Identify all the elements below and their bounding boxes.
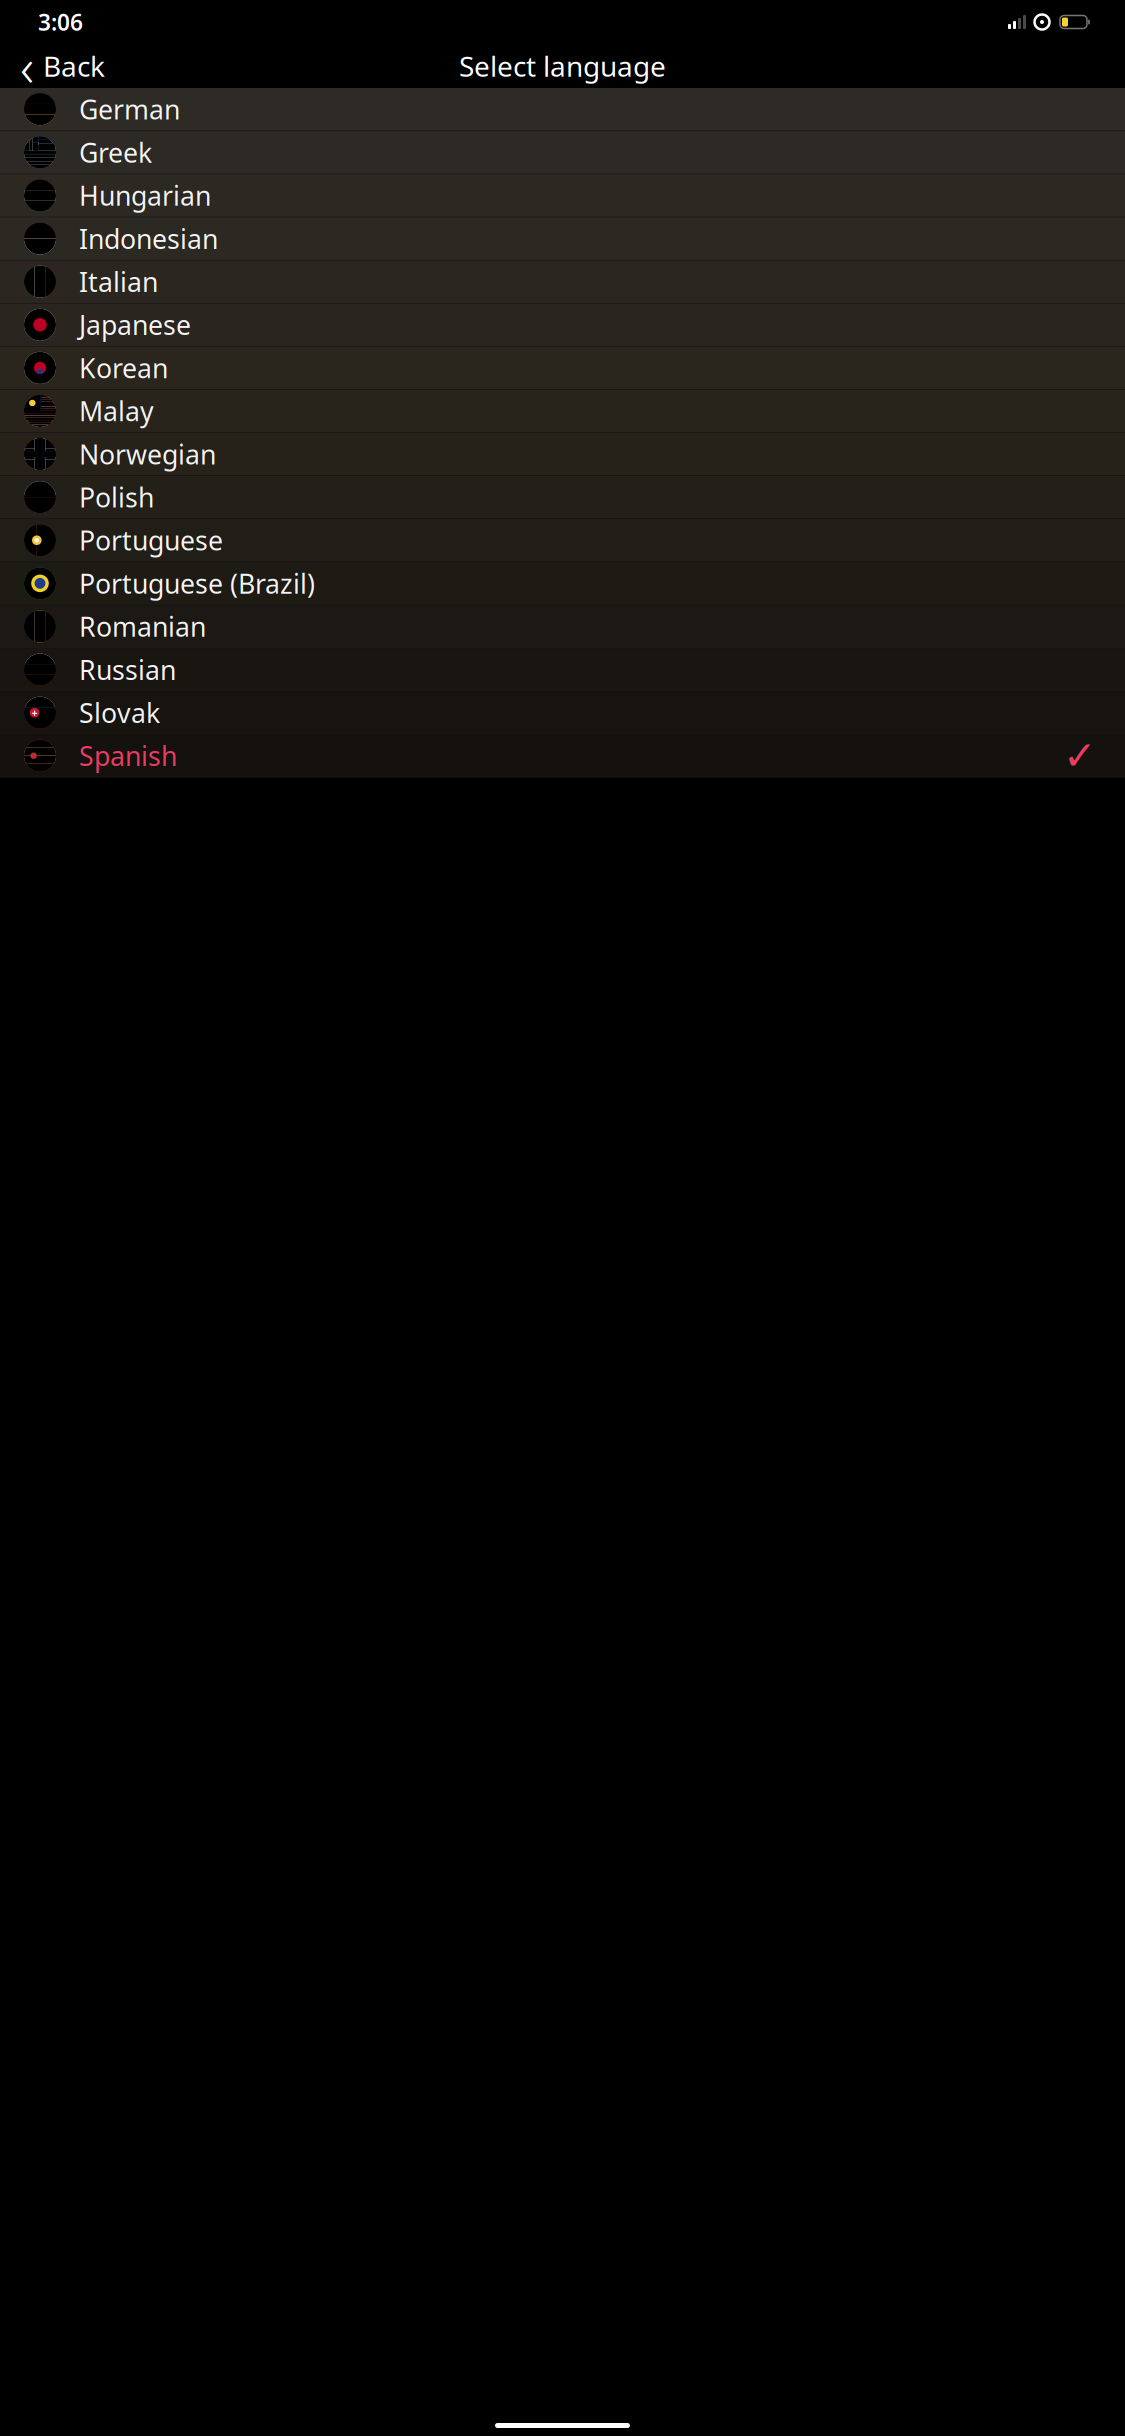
staticText: Portuguese <box>79 522 223 558</box>
staticText: Spanish <box>79 738 177 773</box>
staticText: Back <box>43 47 105 85</box>
button[interactable]: Spanish <box>0 734 1125 778</box>
button[interactable]: Korean <box>0 347 1125 390</box>
staticText: Indonesian <box>79 221 218 256</box>
button[interactable]: German <box>0 88 1125 131</box>
button[interactable]: Polish <box>0 476 1125 519</box>
button[interactable]: + <box>0 691 1125 734</box>
staticText: ✓ <box>1063 733 1097 778</box>
button[interactable]: Hungarian <box>0 174 1125 217</box>
button[interactable]: Romanian <box>0 605 1125 648</box>
staticText: 3:06 <box>38 7 83 37</box>
button[interactable]: Greek <box>0 131 1125 174</box>
staticText: Greek <box>79 135 152 170</box>
button[interactable]: Japanese <box>0 303 1125 347</box>
staticText: ‹ <box>20 31 34 101</box>
staticText: Hungarian <box>79 178 211 213</box>
button[interactable]: Portuguese (Brazil) <box>0 562 1125 605</box>
button[interactable]: Norwegian <box>0 433 1125 476</box>
staticText: Polish <box>79 479 154 515</box>
staticText: Japanese <box>79 307 191 342</box>
staticText: Norwegian <box>79 436 216 472</box>
button[interactable]: Portuguese <box>0 519 1125 562</box>
staticText: Select language <box>459 47 666 85</box>
button[interactable]: Indonesian <box>0 217 1125 260</box>
button[interactable]: Russian <box>0 648 1125 691</box>
staticText: Slovak <box>79 695 160 730</box>
staticText: + <box>32 706 38 720</box>
button[interactable]: ‹ <box>0 44 119 88</box>
staticText: Korean <box>79 350 168 385</box>
staticText: Malay <box>79 393 154 429</box>
staticText: Romanian <box>79 609 206 644</box>
button[interactable]: Malay <box>0 390 1125 433</box>
button[interactable]: Italian <box>0 260 1125 303</box>
staticText: Italian <box>79 264 158 299</box>
staticText: Portuguese (Brazil) <box>79 566 315 601</box>
staticText: Russian <box>79 652 176 687</box>
staticText: German <box>79 91 180 127</box>
